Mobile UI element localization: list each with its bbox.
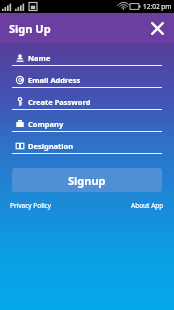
staticText: Company: [28, 119, 64, 129]
button[interactable]: Privacy Policy: [9, 200, 53, 211]
staticText: Designation: [28, 141, 74, 151]
staticText: Create Password: [28, 97, 91, 107]
button[interactable]: About App: [130, 200, 165, 211]
staticText: About App: [131, 201, 164, 210]
staticText: 12:02 pm: [143, 2, 172, 11]
staticText: Privacy Policy: [10, 201, 52, 210]
button[interactable]: Name: [12, 50, 162, 72]
button[interactable]: Designation: [12, 138, 162, 160]
button[interactable]: Company: [12, 116, 162, 138]
button[interactable]: Sign Up: [9, 21, 51, 36]
button[interactable]: Email Address: [12, 72, 162, 94]
staticText: Sign Up: [9, 21, 51, 36]
staticText: Email Address: [28, 75, 81, 85]
button[interactable]: Close: [146, 17, 168, 39]
button[interactable]: Create Password: [12, 94, 162, 116]
staticText: Signup: [68, 173, 106, 188]
staticText: Name: [28, 53, 51, 63]
button[interactable]: Signup: [12, 168, 162, 192]
